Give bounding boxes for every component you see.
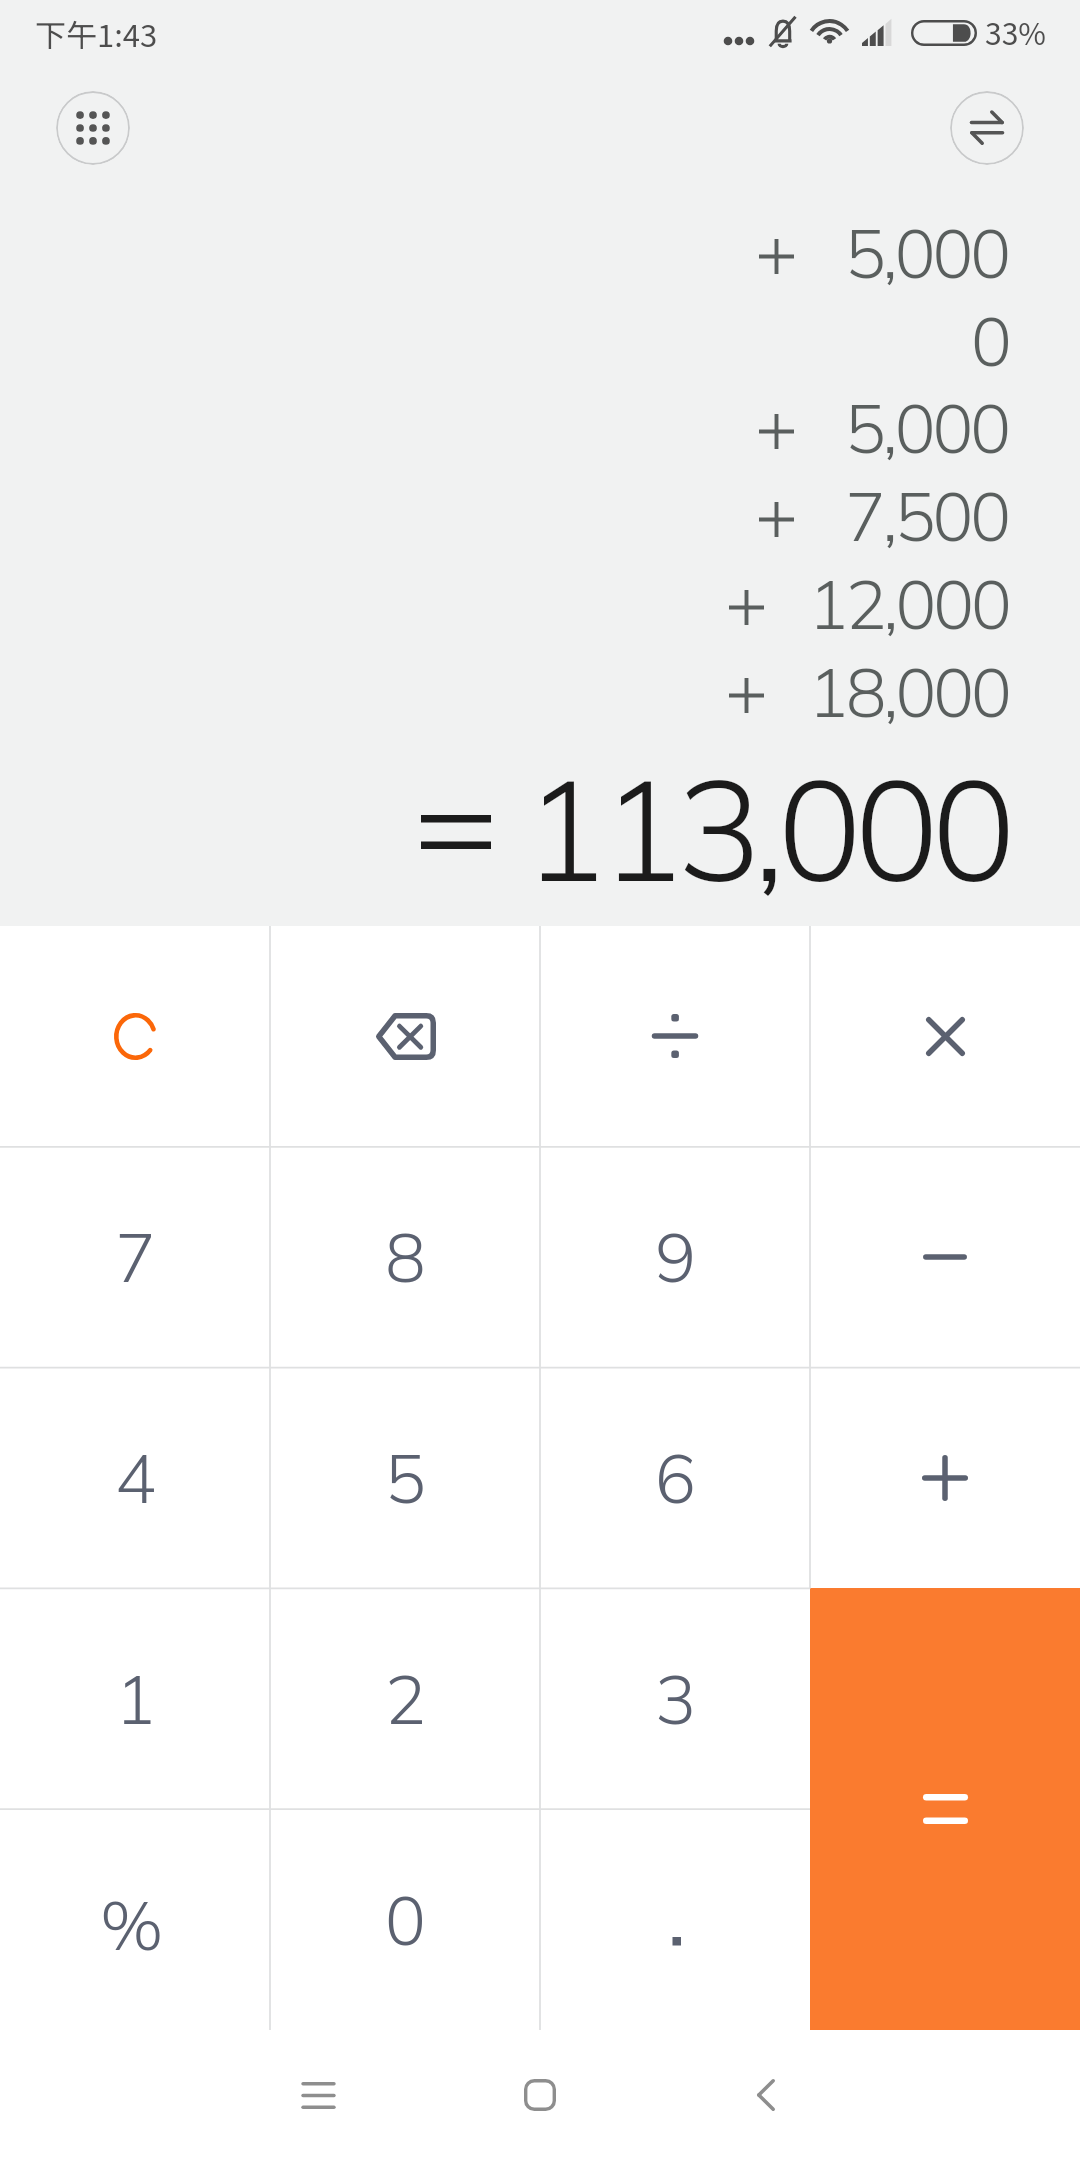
staticText: 12,000 [808,561,1009,646]
other: Minus [923,1254,967,1260]
staticText: 下午1:43 [35,11,158,56]
other: Multiply [926,1017,965,1056]
button[interactable]: Unit converter [950,91,1024,165]
staticText: 6 [655,1435,696,1520]
button[interactable]: Clear [0,926,270,1146]
button[interactable]: 5 [270,1367,540,1588]
button[interactable]: Scientific keypad [56,91,130,165]
staticText: 7,500 [845,473,1009,558]
staticText: 113,000 [523,740,1009,916]
staticText: 1 [115,1656,156,1741]
button[interactable]: Divide [540,926,810,1146]
button[interactable]: Back [711,2040,821,2150]
button[interactable]: 4 [0,1367,270,1588]
other: Divide [652,1014,698,1058]
button[interactable]: 3 [540,1588,810,1809]
button[interactable]: 6 [540,1367,810,1588]
staticText: 5 [385,1435,426,1520]
other: Clear [114,1013,157,1060]
staticText: 5,000 [845,385,1009,470]
staticText: 0 [385,1877,426,1962]
staticText: 2 [385,1656,426,1741]
button[interactable]: Decimal point [540,1809,810,2030]
staticText: 9 [655,1214,696,1299]
button[interactable]: 7 [0,1146,270,1367]
staticText: % [100,1882,164,1967]
button[interactable]: Backspace [270,926,540,1146]
staticText: 0 [971,298,1009,383]
button[interactable]: Plus [810,1367,1080,1588]
button[interactable]: Equals [810,1588,1080,2030]
button[interactable]: 0 [270,1809,540,2030]
staticText: 33% [985,10,1046,53]
staticText: 7 [115,1214,156,1299]
button[interactable]: Recents [263,2040,373,2150]
staticText: 5,000 [845,210,1009,295]
button[interactable]: Minus [810,1146,1080,1367]
staticText: 3 [655,1656,696,1741]
other: Backspace [374,1013,436,1060]
button[interactable]: Multiply [810,926,1080,1146]
button[interactable]: 9 [540,1146,810,1367]
button[interactable]: 1 [0,1588,270,1809]
staticText: 8 [385,1214,426,1299]
button[interactable]: 8 [270,1146,540,1367]
other: Decimal point [655,1900,695,1940]
staticText: 18,000 [808,649,1009,734]
button[interactable]: Percent [0,1809,270,2030]
other: Plus [922,1455,968,1501]
button[interactable]: 2 [270,1588,540,1809]
staticText: 4 [115,1435,156,1520]
button[interactable]: Home [485,2040,595,2150]
